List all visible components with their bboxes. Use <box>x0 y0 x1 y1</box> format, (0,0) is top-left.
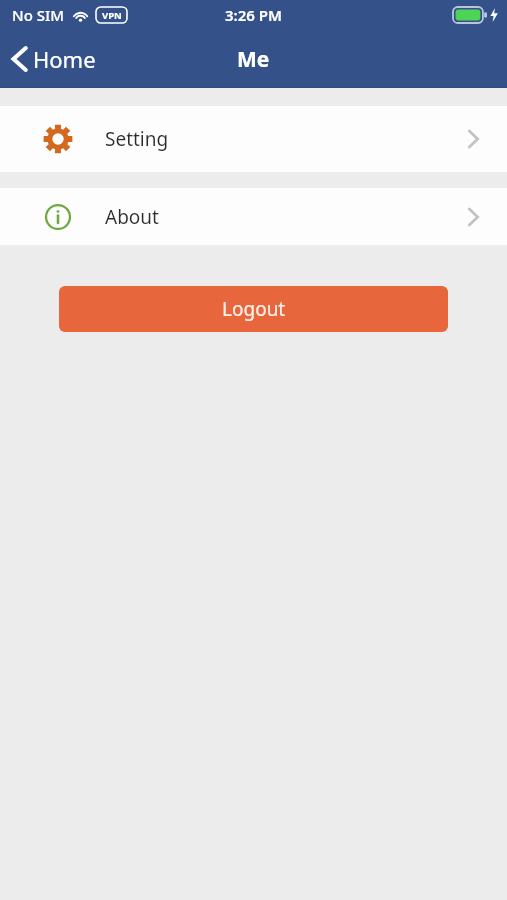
staticText: Home <box>33 44 96 74</box>
staticText: Setting <box>105 126 468 152</box>
button[interactable]: Home <box>0 38 106 80</box>
button[interactable]: About <box>0 188 507 245</box>
button[interactable]: Logout <box>59 286 448 332</box>
staticText: About <box>105 204 468 230</box>
button[interactable]: Setting <box>0 106 507 172</box>
staticText: Me <box>237 45 270 74</box>
staticText: 3:26 PM <box>225 5 282 25</box>
staticText: Logout <box>222 296 286 322</box>
staticText: VPN <box>102 9 122 22</box>
staticText: No SIM <box>12 5 65 25</box>
